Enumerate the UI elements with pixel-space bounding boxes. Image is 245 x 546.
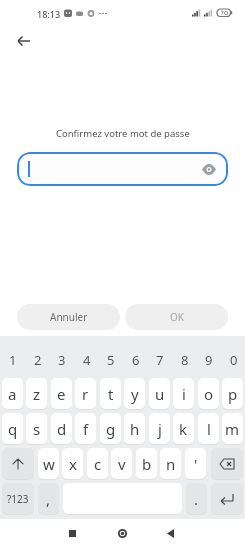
button[interactable]: Annuler: [17, 304, 120, 330]
button[interactable]: .: [186, 483, 207, 514]
staticText: 1: [9, 351, 17, 369]
staticText: a: [8, 384, 17, 404]
staticText: x: [69, 454, 77, 474]
staticText: 6: [132, 351, 140, 369]
button[interactable]: ,: [38, 483, 59, 514]
staticText: m: [225, 419, 240, 439]
button[interactable]: [10, 28, 38, 54]
button[interactable]: u: [149, 378, 170, 409]
staticText: .: [194, 489, 199, 509]
button[interactable]: ': [185, 448, 206, 479]
staticText: u: [155, 384, 165, 404]
staticText: b: [142, 454, 152, 474]
button[interactable]: r: [75, 378, 96, 409]
button[interactable]: OK: [125, 304, 228, 330]
button[interactable]: 0: [223, 344, 244, 376]
button[interactable]: w: [38, 448, 59, 479]
button[interactable]: [211, 448, 243, 479]
button[interactable]: z: [26, 378, 47, 409]
staticText: g: [106, 419, 116, 439]
button[interactable]: l: [198, 413, 219, 444]
staticText: 3: [58, 351, 66, 369]
button[interactable]: [17, 152, 228, 186]
staticText: OK: [170, 310, 184, 324]
staticText: i: [182, 384, 186, 404]
staticText: Confirmez votre mot de passe: [56, 127, 190, 140]
button[interactable]: [60, 521, 84, 545]
staticText: z: [33, 384, 41, 404]
staticText: 0: [230, 351, 238, 369]
staticText: v: [118, 454, 126, 474]
button[interactable]: 4: [76, 344, 97, 376]
button[interactable]: q: [2, 413, 23, 444]
staticText: r: [82, 384, 89, 404]
button[interactable]: a: [2, 378, 23, 409]
staticText: o: [204, 384, 214, 404]
button[interactable]: 7: [149, 344, 170, 376]
button[interactable]: [110, 521, 134, 545]
staticText: ': [194, 454, 198, 474]
button[interactable]: m: [222, 413, 243, 444]
staticText: 18:13: [37, 8, 61, 20]
staticText: c: [94, 454, 102, 474]
button[interactable]: t: [100, 378, 121, 409]
staticText: k: [179, 419, 188, 439]
button[interactable]: [158, 521, 182, 545]
button[interactable]: 9: [198, 344, 219, 376]
staticText: 4: [83, 351, 91, 369]
staticText: 9: [205, 351, 213, 369]
button[interactable]: [2, 448, 34, 479]
staticText: e: [57, 384, 66, 404]
staticText: w: [43, 454, 55, 474]
staticText: h: [130, 419, 140, 439]
button[interactable]: p: [222, 378, 243, 409]
button[interactable]: y: [124, 378, 145, 409]
button[interactable]: o: [198, 378, 219, 409]
button[interactable]: 6: [125, 344, 146, 376]
staticText: q: [8, 419, 18, 439]
staticText: Annuler: [50, 310, 88, 324]
staticText: 8: [181, 351, 189, 369]
button[interactable]: ?123: [2, 483, 34, 514]
button[interactable]: 2: [27, 344, 48, 376]
button[interactable]: x: [62, 448, 83, 479]
staticText: d: [57, 419, 67, 439]
button[interactable]: b: [136, 448, 157, 479]
button[interactable]: c: [87, 448, 108, 479]
button[interactable]: 1: [2, 344, 23, 376]
staticText: l: [207, 419, 211, 439]
button[interactable]: 3: [51, 344, 72, 376]
staticText: 2: [34, 351, 42, 369]
button[interactable]: s: [26, 413, 47, 444]
button[interactable]: f: [75, 413, 96, 444]
staticText: ,: [46, 489, 51, 509]
button[interactable]: 5: [100, 344, 121, 376]
staticText: p: [228, 384, 238, 404]
staticText: t: [108, 384, 114, 404]
staticText: n: [166, 454, 176, 474]
staticText: 5: [107, 351, 115, 369]
staticText: j: [158, 419, 162, 439]
button[interactable]: i: [173, 378, 194, 409]
button[interactable]: e: [51, 378, 72, 409]
staticText: f: [83, 419, 89, 439]
staticText: s: [33, 419, 41, 439]
button[interactable]: j: [149, 413, 170, 444]
staticText: 7: [156, 351, 164, 369]
button[interactable]: g: [100, 413, 121, 444]
button[interactable]: k: [173, 413, 194, 444]
staticText: y: [131, 384, 139, 404]
button[interactable]: 8: [174, 344, 195, 376]
staticText: ?123: [7, 492, 29, 506]
button[interactable]: d: [51, 413, 72, 444]
button[interactable]: h: [124, 413, 145, 444]
button[interactable]: [211, 483, 243, 514]
button[interactable]: v: [111, 448, 132, 479]
button[interactable]: n: [160, 448, 181, 479]
